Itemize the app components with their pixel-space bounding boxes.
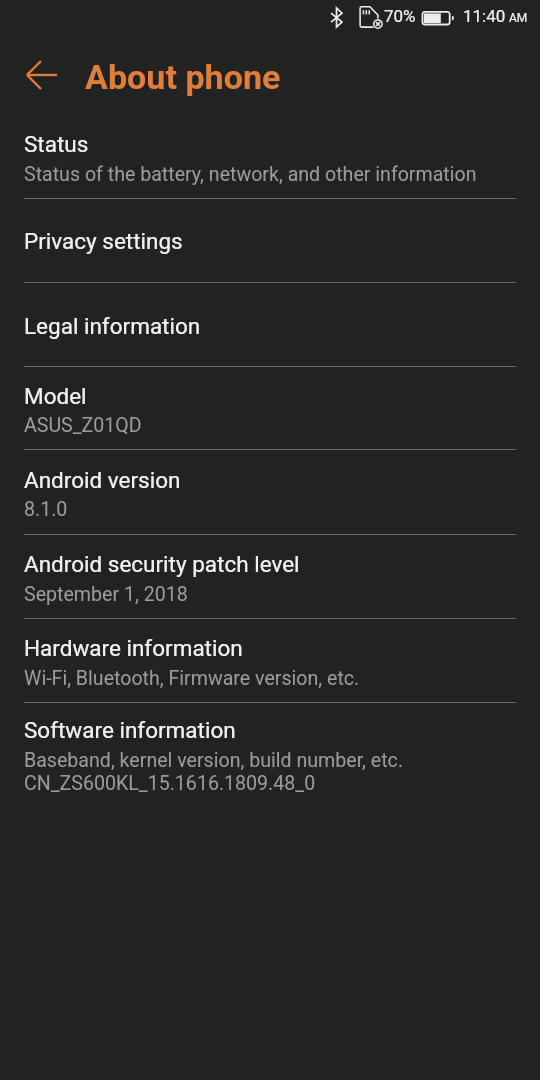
staticText: CN_ZS600KL_15.1616.1809.48_0 — [24, 772, 316, 795]
button[interactable]: Android version — [0, 450, 540, 535]
staticText: 8.1.0 — [24, 498, 68, 521]
staticText: 11:40 — [463, 6, 506, 26]
staticText: 70% — [384, 6, 416, 26]
staticText: Wi-Fi, Bluetooth, Firmware version, etc. — [24, 667, 360, 690]
button[interactable]: Navigate up — [16, 51, 68, 103]
staticText: Status — [24, 131, 89, 157]
staticText: Status of the battery, network, and othe… — [24, 163, 477, 186]
button[interactable]: Software information — [0, 703, 540, 803]
staticText: ASUS_Z01QD — [24, 414, 142, 437]
staticText: Model — [24, 383, 87, 409]
button[interactable]: Model — [0, 367, 540, 450]
button[interactable]: Privacy settings — [0, 199, 540, 283]
staticText: Hardware information — [24, 635, 243, 661]
staticText: Privacy settings — [24, 228, 183, 254]
button[interactable]: Status — [0, 120, 540, 199]
staticText: September 1, 2018 — [24, 583, 188, 606]
staticText: AM — [509, 11, 528, 25]
staticText: Legal information — [24, 313, 201, 339]
button[interactable]: Hardware information — [0, 619, 540, 703]
button[interactable]: Android security patch level — [0, 535, 540, 619]
button[interactable]: Legal information — [0, 283, 540, 367]
staticText: About phone — [85, 57, 281, 97]
staticText: Baseband, kernel version, build number, … — [24, 749, 404, 772]
staticText: Android version — [24, 467, 181, 493]
staticText: Software information — [24, 717, 236, 743]
staticText: Android security patch level — [24, 551, 300, 577]
